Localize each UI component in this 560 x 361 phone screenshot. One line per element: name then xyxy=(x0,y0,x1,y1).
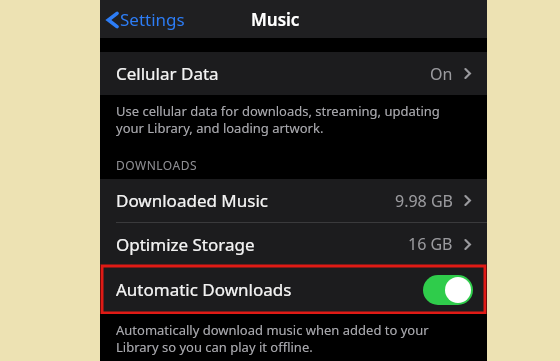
staticText: Music xyxy=(251,8,300,31)
staticText: Downloaded Music xyxy=(116,189,268,212)
staticText: Optimize Storage xyxy=(116,233,255,256)
button[interactable]: Optimize Storage xyxy=(100,223,487,265)
button[interactable]: Cellular Data xyxy=(100,52,487,95)
staticText: Use cellular data for downloads, streami… xyxy=(116,102,467,137)
staticText: Automatically download music when added … xyxy=(116,321,467,356)
staticText: Settings xyxy=(120,8,185,31)
staticText: 9.98 GB xyxy=(395,190,453,212)
button[interactable]: Automatic Downloads xyxy=(102,266,485,313)
staticText: DOWNLOADS xyxy=(116,157,197,173)
button[interactable]: Downloaded Music xyxy=(100,179,487,222)
staticText: On xyxy=(430,63,453,85)
staticText: Cellular Data xyxy=(116,62,219,85)
button[interactable]: Automatic Downloads toggle xyxy=(423,275,473,305)
button[interactable]: Settings xyxy=(106,8,185,31)
staticText: 16 GB xyxy=(408,233,453,255)
staticText: Automatic Downloads xyxy=(116,278,292,301)
